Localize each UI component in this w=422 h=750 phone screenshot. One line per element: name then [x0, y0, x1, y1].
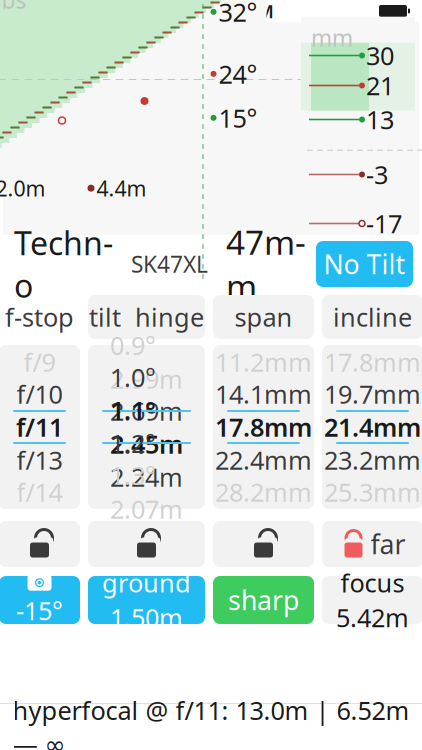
button[interactable]: Lock span	[213, 521, 314, 567]
staticText: f/10	[16, 377, 62, 411]
button[interactable]: 17.8mm	[322, 345, 422, 509]
button[interactable]: sharp	[213, 576, 314, 624]
button[interactable]: Lock far	[322, 521, 422, 567]
staticText: 25.3mm	[324, 475, 421, 509]
staticText: 19.7mm	[324, 377, 421, 411]
staticText: 47mm	[226, 220, 306, 308]
staticText: 14.1mm	[215, 377, 312, 411]
staticText: 5.42m	[336, 600, 409, 634]
staticText: -15°	[16, 594, 63, 627]
staticText: 11.2mm	[215, 345, 312, 379]
staticText: 4.4m	[96, 174, 146, 202]
button[interactable]: Lock f-stop	[0, 521, 80, 567]
staticText: Techno	[14, 221, 113, 306]
staticText: hyperfocal @ f/11: 13.0m | 6.52m — ∞	[12, 693, 409, 750]
staticText: f-stop	[5, 300, 74, 334]
staticText: 0.9° 2.99m	[110, 328, 183, 396]
button[interactable]: span	[213, 295, 314, 339]
staticText: SK47XL	[131, 249, 208, 279]
button[interactable]: focus	[322, 576, 422, 624]
staticText: 21.4mm	[324, 410, 421, 444]
staticText: focus	[340, 566, 404, 599]
button[interactable]: Lock tilt	[88, 521, 205, 567]
staticText: 32°	[218, 0, 257, 29]
staticText: 1.1° 2.45m	[110, 393, 183, 461]
staticText: f/13	[16, 443, 62, 477]
staticText: f/9	[23, 345, 55, 379]
staticText: 1.3° 2.07m	[110, 458, 183, 526]
staticText: span	[234, 300, 292, 334]
staticText: 1.0° 2.69m	[110, 360, 183, 428]
staticText: abs	[0, 0, 26, 15]
staticText: ground	[102, 566, 191, 599]
staticText: 1.2° 2.24m	[110, 426, 183, 494]
button[interactable]: 0.9° 2.99m	[88, 345, 205, 509]
button[interactable]: ground	[88, 576, 205, 624]
staticText: 8:50 AM	[200, 0, 273, 23]
staticText: 28.2mm	[215, 475, 312, 509]
staticText: 2.0m	[0, 174, 45, 202]
staticText: 21	[366, 69, 394, 102]
staticText: 24°	[218, 57, 257, 91]
button[interactable]: 11.2mm	[213, 345, 314, 509]
staticText: 17.8mm	[215, 410, 312, 444]
staticText: far	[370, 526, 405, 562]
staticText: 15°	[218, 101, 257, 135]
staticText: 13	[366, 103, 394, 136]
staticText: -17	[366, 207, 402, 240]
staticText: tilt hinge	[89, 300, 204, 334]
staticText: incline	[333, 300, 412, 334]
button[interactable]: No Tilt	[316, 241, 413, 287]
staticText: f/11	[16, 410, 63, 444]
button[interactable]: incline	[322, 295, 422, 339]
staticText: 1.50m	[110, 600, 183, 634]
staticText: Carrier	[12, 0, 74, 23]
button[interactable]: f-stop	[0, 295, 80, 339]
staticText: mm	[311, 23, 353, 53]
staticText: 22.4mm	[215, 443, 312, 477]
button[interactable]: -15°	[0, 576, 80, 624]
staticText: 23.2mm	[324, 443, 421, 477]
staticText: 17.8mm	[324, 345, 421, 379]
staticText: -3	[366, 158, 388, 191]
staticText: No Tilt	[323, 246, 405, 282]
button[interactable]: tilt hinge	[88, 295, 205, 339]
staticText: f/14	[16, 475, 62, 509]
button[interactable]: f/9	[0, 345, 80, 509]
staticText: sharp	[228, 582, 299, 618]
staticText: 30	[366, 39, 394, 72]
